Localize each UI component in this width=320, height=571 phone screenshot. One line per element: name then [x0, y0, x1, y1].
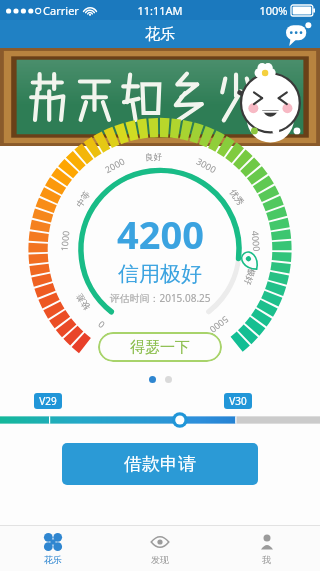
button[interactable]: Page 2: [165, 376, 172, 383]
staticText: 较差: [74, 291, 93, 312]
staticText: V30: [229, 394, 247, 408]
button[interactable]: [0, 48, 320, 146]
staticText: Carrier: [43, 3, 79, 18]
button[interactable]: 借款申请: [62, 443, 258, 485]
staticText: 花乐: [44, 554, 62, 565]
staticText: 2000: [102, 155, 127, 175]
button[interactable]: Page 1: [149, 376, 156, 383]
staticText: 借款申请: [124, 453, 196, 476]
staticText: 信用极好: [118, 261, 202, 287]
staticText: 优秀: [227, 187, 246, 208]
staticText: 1000: [58, 230, 71, 252]
staticText: 4200: [117, 208, 204, 260]
staticText: 11:11AM: [137, 3, 183, 18]
staticText: 我: [262, 554, 271, 565]
staticText: 3000: [194, 155, 219, 175]
staticText: 中等: [74, 189, 93, 210]
staticText: 100%: [259, 3, 288, 18]
staticText: 4000: [250, 230, 263, 252]
staticText: 得瑟一下: [130, 338, 190, 357]
staticText: 0: [95, 318, 107, 332]
staticText: 极好: [242, 267, 257, 286]
button[interactable]: 花乐: [0, 526, 106, 571]
button[interactable]: Messages: [286, 21, 312, 47]
staticText: 5000: [207, 314, 231, 336]
staticText: 花乐: [145, 25, 175, 44]
button[interactable]: 得瑟一下: [98, 332, 222, 362]
button[interactable]: 我: [213, 526, 320, 571]
staticText: V29: [39, 394, 57, 408]
button[interactable]: Version slider: [0, 393, 320, 427]
staticText: 评估时间：2015.08.25: [109, 291, 211, 305]
staticText: 良好: [145, 151, 162, 164]
staticText: 发现: [151, 554, 169, 565]
button[interactable]: 发现: [106, 526, 213, 571]
